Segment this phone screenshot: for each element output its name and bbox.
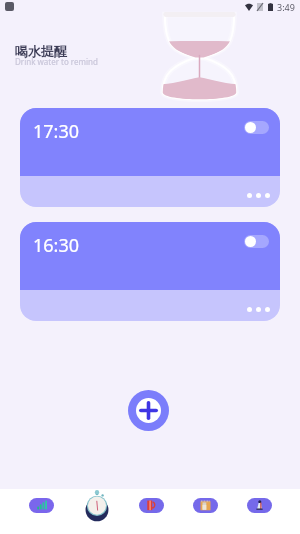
button[interactable]: Statistics xyxy=(24,489,59,521)
button[interactable]: Timer xyxy=(79,489,114,521)
staticText: 3:49 xyxy=(277,1,295,13)
staticText: Drink water to remind xyxy=(15,56,98,67)
button[interactable]: More options xyxy=(247,193,270,198)
button[interactable]: Toggle alarm xyxy=(244,121,269,134)
button[interactable]: Drink xyxy=(134,489,169,521)
staticText: 16:30 xyxy=(33,233,80,258)
staticText: 喝水提醒 xyxy=(15,43,67,59)
staticText: 17:30 xyxy=(33,119,80,144)
button[interactable]: 17:30 xyxy=(20,108,280,207)
button[interactable]: Profile xyxy=(242,489,277,521)
button[interactable]: Toggle alarm xyxy=(244,235,269,248)
button[interactable]: Add reminder xyxy=(128,390,169,431)
button[interactable]: 16:30 xyxy=(20,222,280,321)
button[interactable]: Calendar xyxy=(188,489,223,521)
button[interactable]: More options xyxy=(247,307,270,312)
